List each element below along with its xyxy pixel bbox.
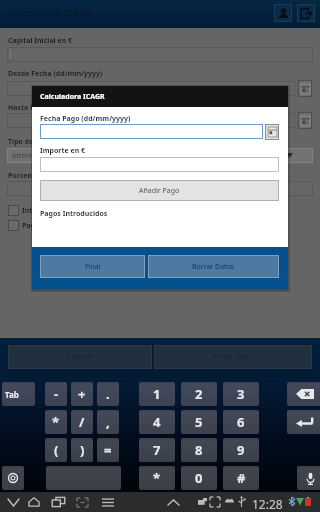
button[interactable]: ( (45, 438, 67, 462)
staticText: , (106, 413, 110, 431)
button[interactable]: Pagos Periódicos (8, 220, 320, 231)
staticText: Interés Compuesto (22, 206, 89, 216)
button[interactable]: . (97, 382, 119, 406)
button[interactable]: = (97, 438, 119, 462)
staticText: Añadir Pago (139, 186, 180, 196)
staticText: 0 (195, 469, 203, 487)
button[interactable] (7, 47, 313, 62)
staticText: Calculadora ICAGR (8, 6, 92, 18)
button[interactable]: Home (22, 492, 45, 512)
button[interactable]: Log out (297, 4, 315, 22)
button[interactable]: Calcular (8, 345, 152, 369)
button[interactable] (7, 81, 295, 96)
button[interactable]: Pick date (298, 80, 312, 97)
staticText: 6 (237, 413, 245, 431)
button[interactable]: Enter (287, 410, 320, 434)
staticText: Pagos Periódicos (22, 221, 81, 231)
staticText: 1 (153, 385, 161, 403)
button[interactable]: # (223, 466, 259, 490)
staticText: + (78, 385, 86, 403)
button[interactable]: 1 (139, 382, 175, 406)
staticText: Capital Inicial en € (8, 36, 73, 46)
staticText: Desde Fecha (dd/mm/yyyy) (8, 69, 103, 79)
button[interactable]: , (97, 410, 119, 434)
button[interactable]: Full screen (71, 492, 94, 512)
staticText: Tipo de Interés (8, 137, 61, 147)
staticText: ( (54, 441, 59, 459)
staticText: 7 (153, 441, 161, 459)
button[interactable]: 8 (181, 438, 217, 462)
button[interactable]: / (71, 410, 93, 434)
staticText: 2 (195, 385, 203, 403)
staticText: Calculadora ICAGR (40, 92, 105, 102)
button[interactable]: 6 (223, 410, 259, 434)
button[interactable]: Expand notifications (162, 492, 185, 512)
button[interactable]: Final (40, 255, 145, 278)
staticText: Interés (12, 151, 36, 161)
button[interactable]: + (71, 382, 93, 406)
staticText: Hasta Fecha (dd/mm/yyyy) (8, 103, 102, 113)
staticText: Importe en € (40, 146, 86, 156)
button[interactable] (7, 113, 295, 128)
staticText: * (153, 469, 161, 487)
staticText: Calcular (67, 352, 94, 362)
button[interactable]: Menu (96, 492, 119, 512)
button[interactable]: Añadir Pago (40, 180, 279, 201)
staticText: Fecha Pago (dd/mm/yyyy) (40, 114, 131, 124)
button[interactable]: Input method (2, 466, 24, 490)
button[interactable]: Interés (7, 148, 313, 163)
staticText: # (237, 469, 246, 487)
staticText: 3 (237, 385, 245, 403)
button[interactable] (40, 124, 263, 139)
staticText: 9 (237, 441, 245, 459)
button[interactable]: Tab (2, 382, 35, 406)
staticText: Borrar Datos (192, 262, 235, 272)
button[interactable]: Pick date (298, 112, 312, 129)
button[interactable]: ) (71, 438, 93, 462)
staticText: ) (80, 441, 85, 459)
button[interactable]: Borrar Datos (148, 255, 279, 278)
staticText: 8 (195, 441, 203, 459)
staticText: 12:28 (252, 496, 283, 512)
staticText: Pagos Introducidos (40, 209, 108, 219)
staticText: Tab (5, 389, 19, 400)
button[interactable]: 2 (181, 382, 217, 406)
button[interactable]: 3 (223, 382, 259, 406)
button[interactable]: Voice input (297, 466, 320, 490)
button[interactable]: Backspace (287, 382, 320, 406)
button[interactable]: 0 (181, 466, 217, 490)
button[interactable]: Interés Compuesto (8, 205, 320, 216)
button[interactable]: Pick date (265, 124, 279, 140)
button[interactable] (40, 157, 279, 172)
staticText: 4 (153, 413, 161, 431)
staticText: = (104, 441, 112, 459)
button[interactable]: 5 (181, 410, 217, 434)
button[interactable]: Borrar Datos (154, 345, 312, 369)
staticText: 5 (195, 413, 203, 431)
button[interactable]: 4 (139, 410, 175, 434)
button[interactable]: Hide keyboard (2, 492, 25, 512)
staticText: . (106, 385, 110, 403)
button[interactable]: Recents (47, 492, 70, 512)
staticText: / (79, 413, 85, 431)
button[interactable] (7, 181, 313, 196)
staticText: Porcentaje (8, 171, 46, 181)
button[interactable]: 7 (139, 438, 175, 462)
staticText: Final (85, 262, 101, 272)
staticText: Borrar Datos (212, 352, 255, 362)
button[interactable]: - (45, 382, 67, 406)
staticText: * (52, 413, 60, 431)
button[interactable]: 9 (223, 438, 259, 462)
button[interactable]: * (139, 466, 175, 490)
button[interactable]: Account (274, 4, 292, 22)
staticText: - (54, 385, 59, 403)
button[interactable]: * (45, 410, 67, 434)
